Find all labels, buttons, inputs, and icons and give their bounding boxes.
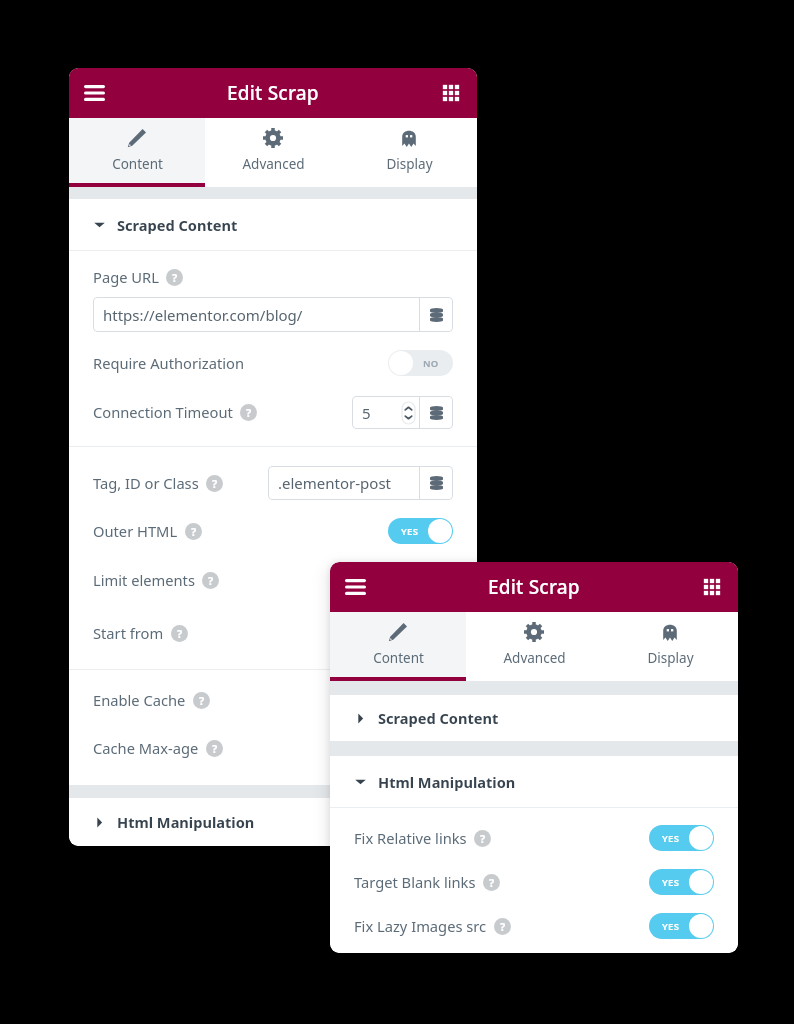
staticText: Scraped Content: [378, 708, 499, 728]
button[interactable]: Display: [602, 612, 738, 681]
staticText: ?: [199, 693, 205, 708]
button[interactable]: Menu: [336, 568, 374, 606]
staticText: YES: [401, 525, 419, 538]
staticText: Edit Scrap: [227, 80, 319, 106]
button[interactable]: .elementor-post: [268, 466, 453, 500]
staticText: Content: [112, 155, 163, 173]
button[interactable]: Enabled: [388, 518, 453, 544]
staticText: Advanced: [242, 155, 305, 173]
staticText: Target Blank links: [354, 872, 476, 892]
staticText: Outer HTML: [93, 521, 178, 541]
staticText: NO: [423, 357, 439, 370]
staticText: Fix Lazy Images src: [354, 916, 487, 936]
button[interactable]: Html Manipulation: [69, 798, 477, 846]
staticText: https://elementor.com/blog/: [103, 305, 419, 325]
button[interactable]: Disabled: [388, 350, 453, 376]
staticText: Html Manipulation: [378, 772, 516, 792]
staticText: ?: [500, 919, 506, 934]
staticText: YES: [662, 832, 680, 845]
staticText: YES: [662, 876, 680, 889]
staticText: YES: [662, 920, 680, 933]
button[interactable]: Enabled: [649, 869, 714, 895]
staticText: ?: [172, 270, 178, 285]
staticText: ?: [212, 476, 218, 491]
staticText: ?: [177, 626, 183, 641]
staticText: Enable Cache: [93, 690, 186, 710]
staticText: ?: [489, 875, 495, 890]
staticText: ?: [191, 524, 197, 539]
staticText: Edit Scrap: [488, 574, 580, 600]
staticText: Page URL: [93, 267, 159, 287]
button[interactable]: Apps: [694, 569, 730, 605]
button[interactable]: Enabled: [649, 913, 714, 939]
button[interactable]: Menu: [75, 74, 113, 112]
staticText: ?: [246, 405, 252, 420]
button[interactable]: Content: [69, 118, 205, 187]
staticText: 5: [362, 403, 397, 423]
button[interactable]: Scraped Content: [330, 695, 738, 741]
staticText: Cache Max-age: [93, 738, 199, 758]
staticText: Tag, ID or Class: [93, 473, 199, 493]
staticText: Limit elements: [93, 570, 195, 590]
button[interactable]: Enabled: [649, 825, 714, 851]
staticText: Advanced: [503, 649, 566, 667]
staticText: Require Authorization: [93, 353, 244, 373]
button[interactable]: Content: [330, 612, 466, 681]
staticText: Fix Relative links: [354, 828, 467, 848]
staticText: ?: [480, 831, 486, 846]
staticText: .elementor-post: [278, 473, 419, 493]
button[interactable]: 5: [352, 396, 453, 429]
staticText: Scraped Content: [117, 215, 238, 235]
button[interactable]: Html Manipulation: [330, 756, 738, 807]
button[interactable]: Advanced: [205, 118, 341, 187]
staticText: Content: [373, 649, 424, 667]
button[interactable]: Scraped Content: [69, 199, 477, 250]
button[interactable]: https://elementor.com/blog/: [93, 297, 453, 332]
button[interactable]: Advanced: [466, 612, 602, 681]
button[interactable]: Display: [341, 118, 477, 187]
staticText: Display: [386, 155, 433, 173]
staticText: ?: [212, 741, 218, 756]
staticText: Connection Timeout: [93, 402, 233, 422]
button[interactable]: Apps: [433, 75, 469, 111]
staticText: Html Manipulation: [117, 812, 255, 832]
staticText: Start from: [93, 623, 164, 643]
staticText: ?: [208, 573, 214, 588]
staticText: Display: [647, 649, 694, 667]
